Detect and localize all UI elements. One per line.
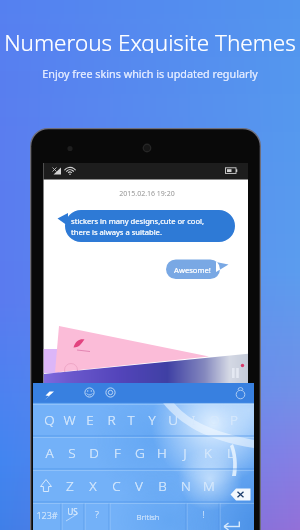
button[interactable]	[83, 436, 106, 469]
staticText: G	[135, 444, 145, 462]
staticText: P	[230, 411, 238, 429]
button[interactable]	[82, 469, 105, 502]
staticText: !	[202, 508, 205, 520]
button[interactable]: Backspace	[228, 469, 254, 502]
staticText: V	[135, 477, 143, 495]
button[interactable]	[59, 403, 80, 436]
staticText: Z	[66, 477, 74, 495]
button[interactable]	[183, 403, 204, 436]
button[interactable]	[59, 469, 82, 502]
staticText: B	[158, 477, 167, 495]
button[interactable]	[224, 403, 245, 436]
staticText: L	[227, 444, 234, 462]
staticText: F	[114, 444, 121, 462]
staticText: I	[191, 411, 196, 429]
button[interactable]	[38, 403, 59, 436]
staticText: H	[157, 444, 167, 462]
staticText: J	[183, 444, 187, 462]
staticText: T	[127, 411, 135, 429]
staticText: W	[63, 411, 76, 429]
button[interactable]: Shift	[33, 469, 58, 502]
button[interactable]	[60, 436, 83, 469]
button[interactable]	[151, 436, 174, 469]
staticText: Enjoy free skins which is updated regula…	[42, 66, 258, 81]
button[interactable]	[162, 403, 183, 436]
staticText: Y	[148, 411, 156, 429]
staticText: stickers in many designs,cute or cool, t…	[71, 216, 205, 237]
button[interactable]: Switch language	[61, 502, 84, 530]
button[interactable]	[38, 436, 61, 469]
staticText: E	[86, 411, 94, 429]
button[interactable]	[219, 436, 242, 469]
button[interactable]	[80, 403, 101, 436]
button[interactable]	[128, 436, 151, 469]
button[interactable]	[151, 469, 174, 502]
button[interactable]	[105, 469, 128, 502]
staticText: ?	[95, 508, 99, 520]
staticText: N	[181, 477, 191, 495]
staticText: Awesome!	[174, 265, 211, 275]
button[interactable]	[174, 469, 197, 502]
staticText: O	[209, 411, 220, 429]
button[interactable]	[109, 502, 186, 530]
button[interactable]: Enter	[219, 502, 254, 530]
button[interactable]	[84, 502, 109, 530]
button[interactable]	[121, 403, 142, 436]
staticText: D	[89, 444, 99, 462]
staticText: Numerous Exquisite Themes	[4, 27, 296, 53]
staticText: 2015.02.16 19:20	[119, 189, 175, 199]
staticText: British	[136, 511, 160, 522]
staticText: M	[203, 477, 215, 495]
staticText: A	[45, 444, 54, 462]
button[interactable]	[128, 469, 151, 502]
button[interactable]	[186, 502, 219, 530]
staticText: R	[107, 411, 116, 429]
staticText: K	[204, 444, 212, 462]
button[interactable]	[203, 403, 224, 436]
button[interactable]: Themes	[102, 384, 120, 403]
button[interactable]	[174, 436, 197, 469]
button[interactable]: Flash keyboard	[40, 384, 72, 403]
button[interactable]	[33, 502, 61, 530]
staticText: X	[89, 477, 97, 495]
staticText: S	[68, 444, 76, 462]
button[interactable]: Emoji	[82, 384, 100, 403]
button[interactable]: Settings	[232, 384, 250, 403]
staticText: C	[112, 477, 121, 495]
staticText: U	[168, 411, 178, 429]
button[interactable]	[196, 436, 219, 469]
button[interactable]	[197, 469, 220, 502]
staticText: US	[67, 506, 78, 517]
button[interactable]	[106, 436, 129, 469]
staticText: Q	[44, 411, 55, 429]
button[interactable]	[142, 403, 163, 436]
button[interactable]	[100, 403, 121, 436]
staticText: 123#	[36, 509, 58, 521]
